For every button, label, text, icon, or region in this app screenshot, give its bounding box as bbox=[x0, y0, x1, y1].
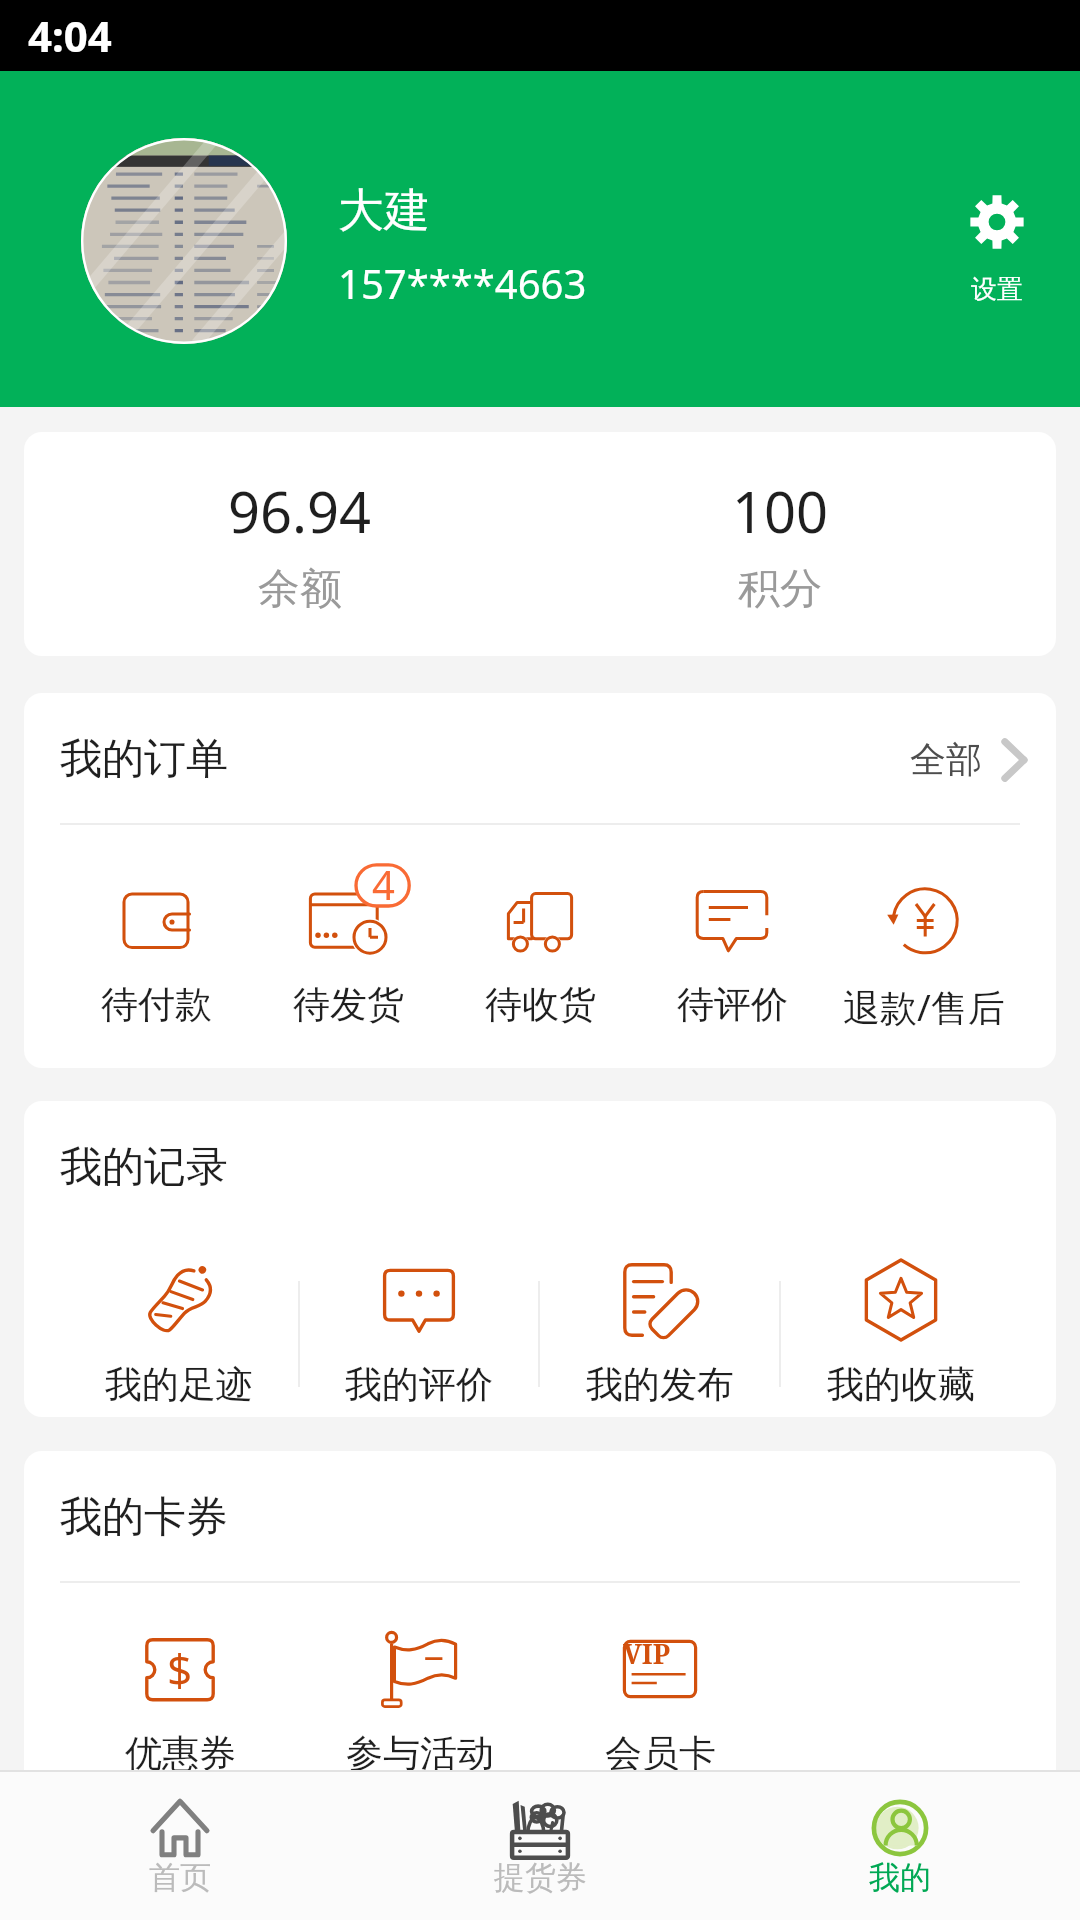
staticText: $ bbox=[167, 1639, 193, 1699]
staticText: 4:04 bbox=[28, 7, 112, 64]
staticText: 我的评价 bbox=[345, 1361, 493, 1408]
button[interactable]: 100 bbox=[540, 432, 1020, 656]
staticText: 积分 bbox=[738, 563, 822, 616]
staticText: 我的 bbox=[869, 1858, 931, 1897]
button[interactable]: 参与活动 bbox=[300, 1629, 540, 1777]
staticText: 首页 bbox=[149, 1858, 211, 1897]
button[interactable]: 首页 bbox=[0, 1798, 360, 1920]
staticText: 待发货 bbox=[293, 981, 404, 1028]
staticText: 96.94 bbox=[228, 473, 372, 549]
button[interactable]: 4 bbox=[252, 880, 444, 1028]
staticText: 157****4663 bbox=[338, 256, 587, 310]
button[interactable]: VIP bbox=[540, 1629, 780, 1777]
button[interactable]: 我的收藏 bbox=[781, 1260, 1020, 1408]
staticText: 100 bbox=[732, 473, 829, 549]
button[interactable]: 待付款 bbox=[60, 880, 252, 1028]
staticText: 待收货 bbox=[485, 981, 596, 1028]
staticText: 参与活动 bbox=[346, 1730, 494, 1777]
staticText: 会员卡 bbox=[605, 1730, 716, 1777]
staticText: 我的订单 bbox=[60, 733, 228, 786]
staticText: VIP bbox=[623, 1635, 670, 1672]
staticText: 待付款 bbox=[101, 981, 212, 1028]
button[interactable]: 待评价 bbox=[636, 880, 828, 1028]
button[interactable]: 我的评价 bbox=[300, 1260, 538, 1408]
staticText: 我的足迹 bbox=[105, 1361, 253, 1408]
staticText: 我的收藏 bbox=[827, 1361, 975, 1408]
staticText: 设置 bbox=[971, 273, 1023, 306]
staticText: 退款/售后 bbox=[843, 981, 1005, 1032]
staticText: 优惠券 bbox=[125, 1730, 236, 1777]
staticText: 余额 bbox=[258, 563, 342, 616]
button[interactable]: 我的足迹 bbox=[60, 1260, 298, 1408]
button[interactable]: 96.94 bbox=[60, 432, 540, 656]
button[interactable]: 我的 bbox=[720, 1798, 1080, 1920]
button[interactable]: $ bbox=[60, 1629, 300, 1777]
button[interactable]: 我的发布 bbox=[540, 1260, 779, 1408]
button[interactable]: 退款/售后 bbox=[828, 880, 1020, 1032]
staticText: 4 bbox=[372, 857, 395, 911]
staticText: 我的发布 bbox=[586, 1361, 734, 1408]
staticText: 全部 bbox=[910, 737, 982, 782]
staticText: 我的卡券 bbox=[60, 1491, 228, 1544]
button[interactable]: 全部 bbox=[904, 727, 1042, 792]
staticText: 大建 bbox=[338, 182, 430, 240]
button[interactable]: 提货券 bbox=[360, 1798, 720, 1920]
staticText: 待评价 bbox=[677, 981, 788, 1028]
button[interactable]: 待收货 bbox=[444, 880, 636, 1028]
staticText: 我的记录 bbox=[60, 1141, 228, 1194]
staticText: 提货券 bbox=[494, 1858, 587, 1897]
button[interactable]: 设置 bbox=[952, 185, 1042, 316]
